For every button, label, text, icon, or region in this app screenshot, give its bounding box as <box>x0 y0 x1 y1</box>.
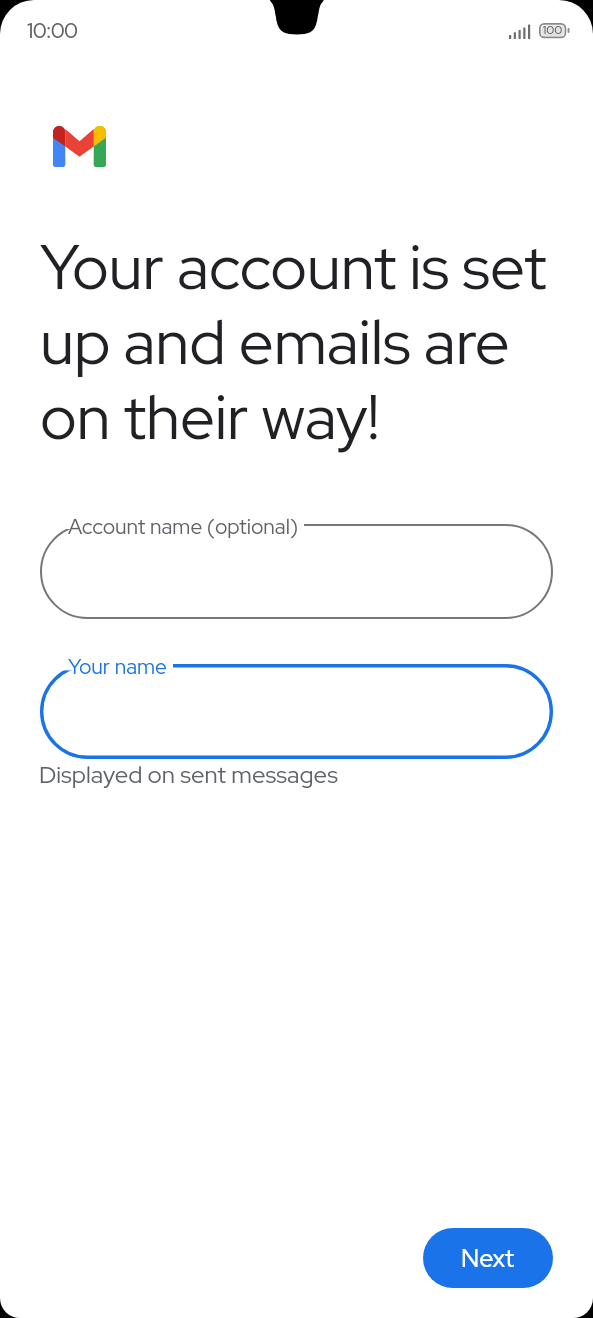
staticText: Next <box>461 1242 515 1275</box>
staticText: Account name (optional) <box>68 513 299 541</box>
button[interactable]: Account name (optional) <box>40 513 553 619</box>
button[interactable]: Next <box>423 1228 553 1288</box>
staticText: 10:00 <box>27 17 78 45</box>
button[interactable]: Your name <box>40 653 553 759</box>
staticText: 100 <box>539 22 566 38</box>
staticText: Your account is set up and emails are on… <box>40 226 565 458</box>
staticText: Displayed on sent messages <box>39 759 338 791</box>
staticText: Your name <box>68 653 167 681</box>
